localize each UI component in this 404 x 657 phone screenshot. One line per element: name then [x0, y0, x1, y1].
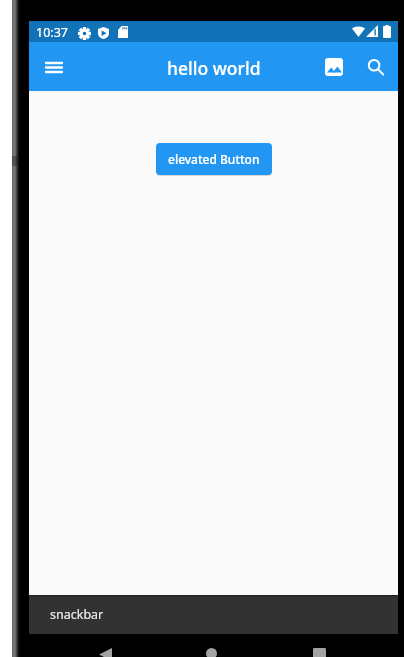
- button[interactable]: Gallery: [317, 50, 351, 84]
- staticText: 10:37: [36, 24, 68, 41]
- button[interactable]: elevated Button: [156, 143, 272, 175]
- button[interactable]: Search: [357, 48, 395, 86]
- staticText: hello world: [167, 56, 261, 80]
- button[interactable]: Home: [206, 643, 218, 657]
- button[interactable]: snackbar: [29, 595, 398, 634]
- staticText: snackbar: [50, 606, 104, 623]
- button[interactable]: Recents: [313, 643, 326, 657]
- staticText: elevated Button: [168, 151, 260, 167]
- button[interactable]: Menu: [37, 55, 71, 89]
- button[interactable]: Back: [99, 643, 112, 657]
